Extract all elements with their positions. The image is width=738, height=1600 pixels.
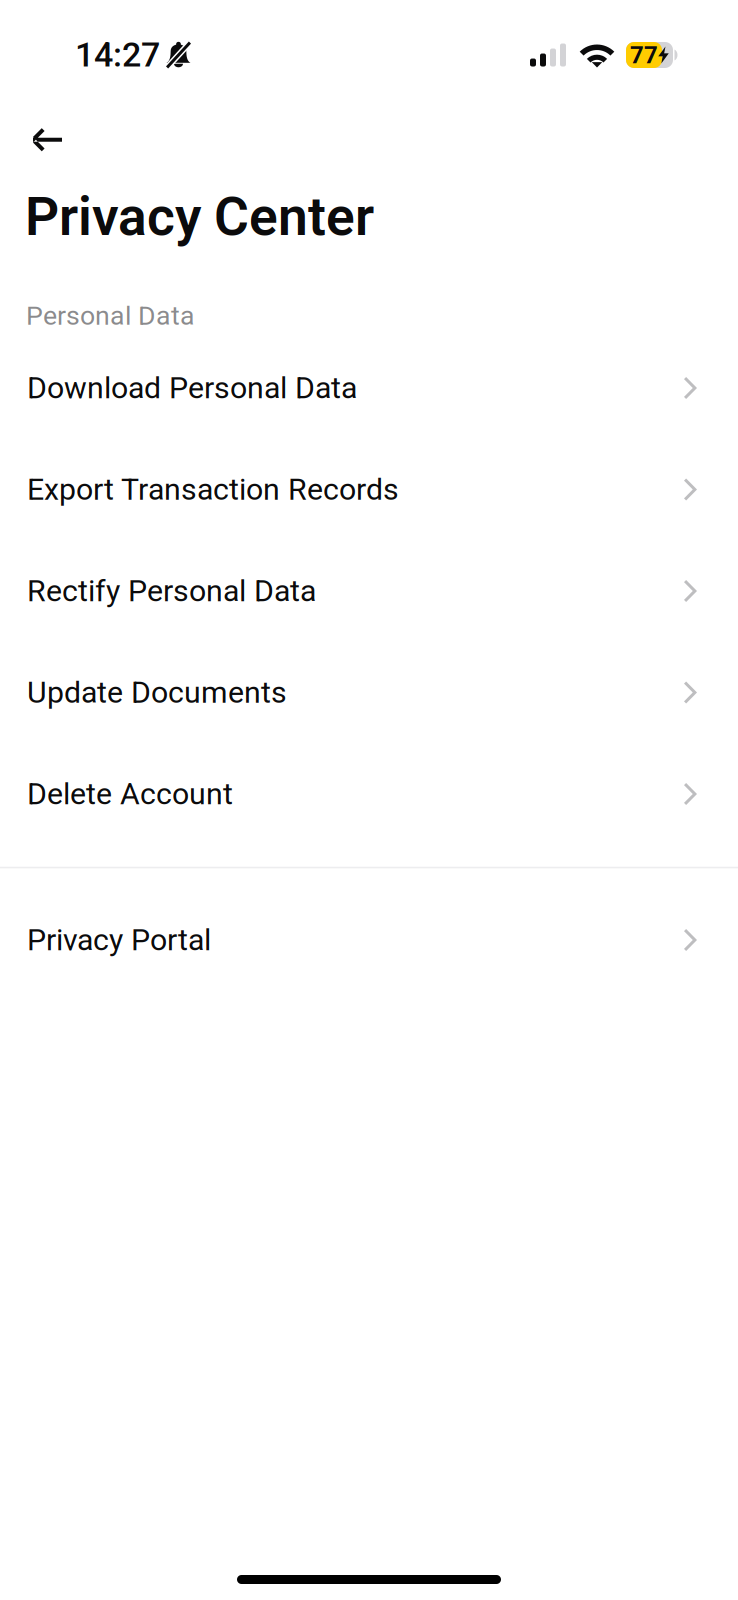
staticText: Privacy Portal [27,922,211,958]
button[interactable]: Update Documents [0,642,738,743]
staticText: Update Documents [27,675,287,710]
button[interactable]: Back [0,115,76,164]
button[interactable]: Export Transaction Records [0,439,738,540]
staticText: Export Transaction Records [27,472,399,507]
button[interactable]: Download Personal Data [0,337,738,439]
staticText: 77 [630,41,658,69]
button[interactable]: Delete Account [0,743,738,845]
staticText: Personal Data [26,300,195,331]
staticText: Privacy Center [25,185,374,248]
button[interactable]: Privacy Portal [0,889,738,991]
staticText: Delete Account [27,776,233,812]
staticText: 14:27 [75,35,160,75]
staticText: Rectify Personal Data [27,573,316,609]
button[interactable]: Rectify Personal Data [0,540,738,642]
staticText: Download Personal Data [27,370,357,406]
